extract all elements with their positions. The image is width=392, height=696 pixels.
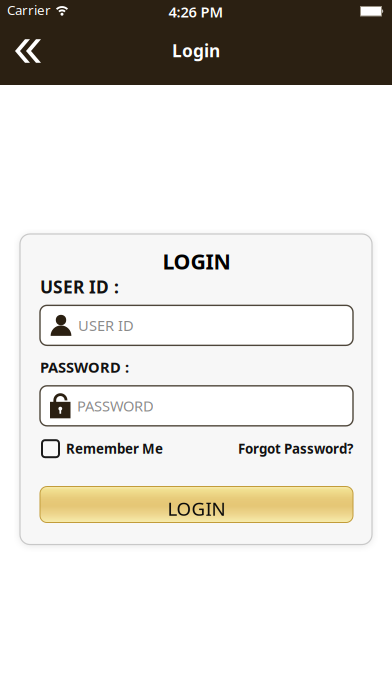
staticText: USER ID : xyxy=(40,275,119,298)
button[interactable]: LOGIN xyxy=(40,486,353,522)
staticText: Login xyxy=(172,39,220,62)
staticText: PASSWORD : xyxy=(40,357,129,377)
button[interactable]: PASSWORD xyxy=(40,386,353,426)
staticText: USER ID xyxy=(78,316,134,335)
staticText: 4:26 PM xyxy=(168,2,223,21)
button[interactable]: Forgot Password? xyxy=(238,440,353,457)
staticText: Forgot Password? xyxy=(238,440,353,457)
staticText: Remember Me xyxy=(66,440,163,457)
button[interactable]: USER ID xyxy=(40,305,353,345)
staticText: Carrier xyxy=(7,1,51,19)
staticText: LOGIN xyxy=(167,496,225,521)
button[interactable]: Back xyxy=(0,0,41,63)
button[interactable]: Remember Me xyxy=(42,440,163,457)
staticText: LOGIN xyxy=(162,247,230,275)
staticText: PASSWORD xyxy=(77,396,154,416)
